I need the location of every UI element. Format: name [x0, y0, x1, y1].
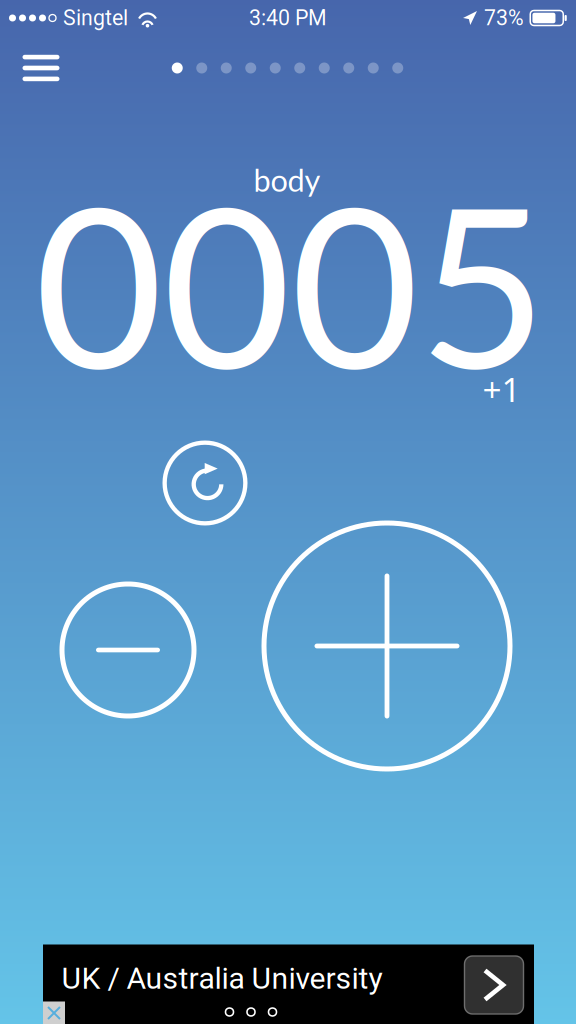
- button[interactable]: Open advertisement: [464, 956, 523, 1014]
- button[interactable]: Menu: [7, 42, 75, 94]
- button[interactable]: Decrease count: [60, 582, 196, 718]
- staticText: Singtel: [63, 5, 128, 30]
- staticText: 3:40 PM: [249, 5, 327, 30]
- button[interactable]: Close advertisement: [43, 1001, 65, 1024]
- staticText: UK / Australia University: [61, 961, 382, 996]
- staticText: 0005: [34, 149, 546, 415]
- staticText: body: [253, 162, 320, 198]
- button[interactable]: Reset counter: [163, 441, 247, 525]
- staticText: +1: [482, 367, 520, 411]
- button[interactable]: Increase count: [262, 521, 512, 771]
- staticText: 73%: [484, 5, 524, 30]
